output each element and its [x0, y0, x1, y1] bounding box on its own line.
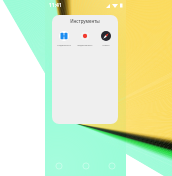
button[interactable]: Back	[55, 162, 63, 170]
button[interactable]: Видеозапись	[76, 31, 94, 46]
button[interactable]: Recents	[108, 162, 116, 170]
staticText: Видеозапись	[76, 43, 94, 46]
staticText: 11:41	[49, 2, 62, 9]
button[interactable]: Поиск	[97, 31, 115, 46]
staticText: Поделиться	[55, 43, 73, 46]
staticText: Инструменты	[52, 18, 118, 24]
button[interactable]: Поделиться	[55, 31, 73, 46]
staticText: Поиск	[97, 43, 115, 46]
button[interactable]: Home	[82, 162, 90, 170]
